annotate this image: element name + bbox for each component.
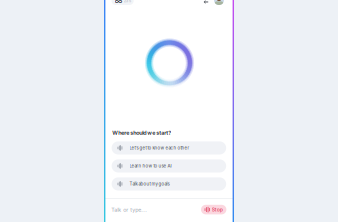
staticText: Learn how to use AI [130,163,172,169]
staticText: ∞ [114,0,122,6]
staticText: Where should we start? [112,129,171,136]
button[interactable]: Learn how to use AI [112,159,226,172]
button[interactable]: ∞ [111,0,134,5]
staticText: Stop [212,206,223,213]
staticText: Let's get to know each other [130,145,190,151]
button[interactable]: Stop [201,205,226,214]
staticText: Talk or type... [111,206,147,213]
button[interactable]: Let's get to know each other [112,141,226,154]
staticText: 235 [124,0,131,3]
button[interactable]: Talk about my goals [112,177,226,190]
button[interactable]: Back [201,0,211,7]
staticText: Talk about my goals [130,181,170,187]
button[interactable]: Profile [214,0,224,5]
